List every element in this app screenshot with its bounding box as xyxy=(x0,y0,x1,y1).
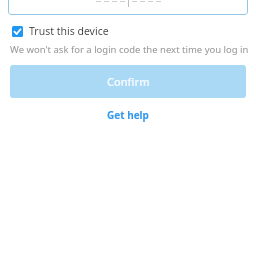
staticText: Get help xyxy=(107,108,149,122)
button[interactable]: Trust this device xyxy=(0,23,256,39)
button[interactable]: Confirm xyxy=(10,65,246,98)
button[interactable]: Login code field xyxy=(8,0,248,15)
staticText: Trust this device xyxy=(29,24,109,38)
staticText: We won't ask for a login code the next t… xyxy=(10,43,249,56)
button[interactable]: Get help xyxy=(0,106,256,124)
staticText: Confirm xyxy=(107,74,150,89)
